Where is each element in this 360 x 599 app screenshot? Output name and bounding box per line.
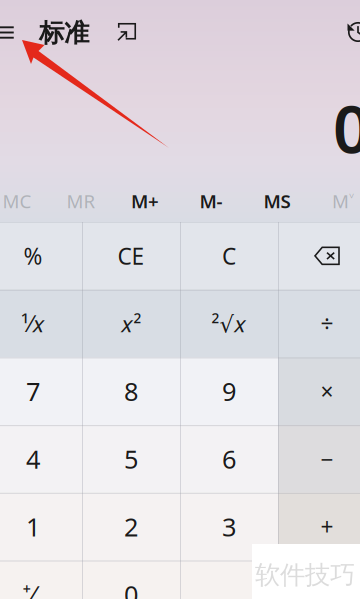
- button[interactable]: CE: [82, 222, 180, 290]
- button[interactable]: ×: [278, 357, 360, 425]
- staticText: 标准: [39, 17, 89, 48]
- staticText: ×: [320, 376, 333, 406]
- staticText: ²√𝑥: [211, 308, 246, 339]
- button[interactable]: MC: [0, 184, 48, 218]
- staticText: 5: [124, 442, 138, 476]
- staticText: %: [23, 241, 42, 271]
- button[interactable]: ²√𝑥: [180, 290, 278, 357]
- button[interactable]: 5: [82, 425, 180, 493]
- staticText: +: [320, 512, 333, 542]
- button[interactable]: [278, 222, 360, 290]
- staticText: 9: [222, 374, 236, 408]
- staticText: MR: [66, 189, 95, 213]
- button[interactable]: Menu: [0, 14, 21, 50]
- button[interactable]: 9: [180, 357, 278, 425]
- staticText: CE: [117, 241, 144, 271]
- staticText: 3: [222, 510, 236, 543]
- button[interactable]: %: [0, 222, 82, 290]
- staticText: M˅: [332, 189, 354, 213]
- button[interactable]: 0: [82, 560, 180, 599]
- button[interactable]: 1: [0, 493, 82, 560]
- button[interactable]: 2: [82, 493, 180, 560]
- button[interactable]: M˅: [312, 184, 360, 218]
- staticText: 软件技巧: [255, 559, 355, 590]
- staticText: 0: [333, 85, 360, 171]
- button[interactable]: ¹⁄𝑥: [0, 290, 82, 357]
- staticText: −: [320, 444, 333, 474]
- button[interactable]: ÷: [278, 290, 360, 357]
- button[interactable]: .: [180, 560, 278, 599]
- button[interactable]: =: [278, 560, 360, 599]
- staticText: 6: [222, 442, 236, 476]
- button[interactable]: MS: [246, 184, 308, 218]
- staticText: 8: [124, 374, 138, 408]
- staticText: 𝑥²: [120, 308, 141, 339]
- button[interactable]: Keep on top: [112, 15, 142, 49]
- staticText: ÷: [320, 308, 333, 339]
- button[interactable]: History: [342, 15, 360, 49]
- button[interactable]: C: [180, 222, 278, 290]
- button[interactable]: 7: [0, 357, 82, 425]
- button[interactable]: +: [278, 493, 360, 560]
- button[interactable]: ⁺⁄₋: [0, 560, 82, 599]
- button[interactable]: 4: [0, 425, 82, 493]
- button[interactable]: M-: [180, 184, 242, 218]
- staticText: ⁺⁄₋: [22, 577, 43, 599]
- staticText: MC: [2, 189, 31, 213]
- staticText: =: [320, 579, 333, 599]
- staticText: M+: [131, 189, 159, 213]
- button[interactable]: 6: [180, 425, 278, 493]
- staticText: 0: [124, 577, 138, 599]
- button[interactable]: 3: [180, 493, 278, 560]
- staticText: 2: [124, 510, 138, 543]
- button[interactable]: M+: [114, 184, 176, 218]
- staticText: MS: [263, 189, 290, 213]
- staticText: 1: [26, 510, 40, 543]
- staticText: 7: [26, 374, 40, 408]
- button[interactable]: MR: [50, 184, 112, 218]
- staticText: ¹⁄𝑥: [21, 308, 45, 339]
- staticText: 4: [26, 442, 40, 476]
- button[interactable]: −: [278, 425, 360, 493]
- button[interactable]: 𝑥²: [82, 290, 180, 357]
- staticText: C: [222, 241, 236, 271]
- button[interactable]: 8: [82, 357, 180, 425]
- staticText: M-: [199, 189, 222, 213]
